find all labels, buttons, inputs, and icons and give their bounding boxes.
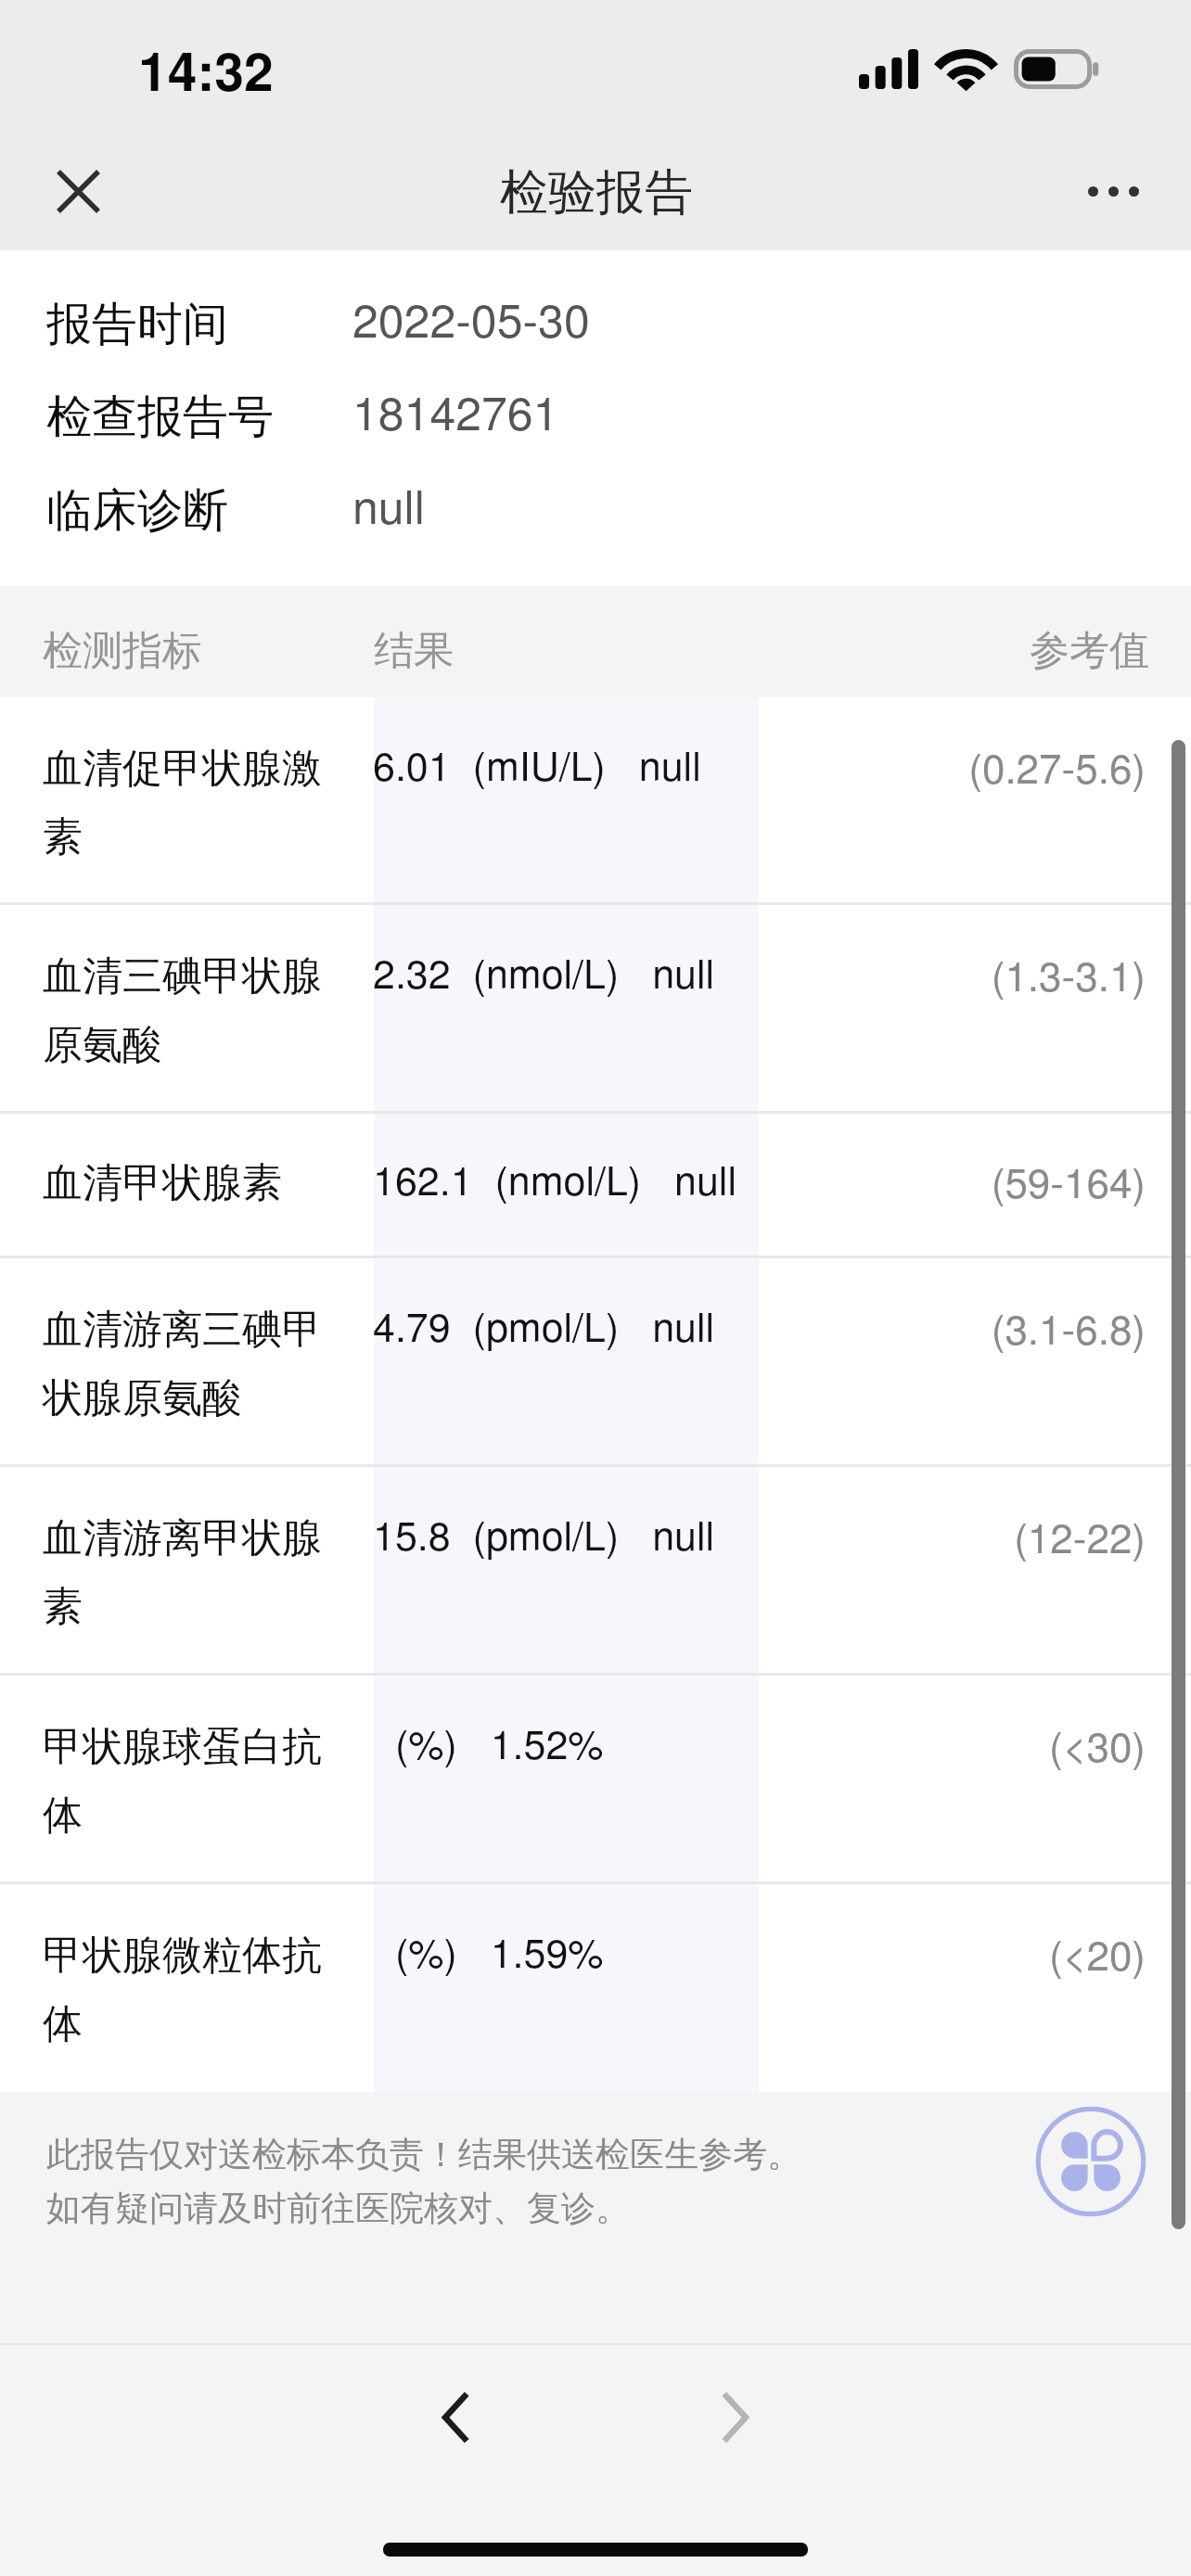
staticText: 18142761 [352, 377, 559, 444]
button[interactable]: Close [27, 140, 129, 242]
staticText: 4.79 (pmol/L) null [373, 1296, 758, 1354]
staticText: (3.1-6.8) [839, 1297, 1146, 1356]
button[interactable]: Back [403, 2366, 506, 2468]
button[interactable]: 血清促甲状腺激素 [0, 697, 1191, 905]
staticText: 血清游离甲状腺素 [43, 1513, 338, 1631]
button[interactable]: 血清甲状腺素 [0, 1114, 1191, 1258]
staticText: 2.32 (nmol/L) null [373, 943, 758, 1001]
staticText: 2022-05-30 [352, 285, 590, 351]
staticText: (%) 1.59% [373, 1922, 758, 1980]
staticText: 血清促甲状腺激素 [43, 744, 338, 861]
button[interactable]: 血清三碘甲状腺原氨酸 [0, 905, 1191, 1114]
staticText: 临床诊断 [46, 482, 228, 540]
button[interactable]: Forward [685, 2366, 787, 2468]
staticText: 检测指标 [43, 626, 202, 676]
staticText: (12-22) [839, 1506, 1146, 1564]
button[interactable]: Mini program assistant [1034, 2105, 1147, 2218]
staticText: 如有疑问请及时前往医院核对、复诊。 [46, 2187, 630, 2230]
button[interactable]: 血清游离甲状腺素 [0, 1467, 1191, 1676]
staticText: 甲状腺球蛋白抗体 [43, 1722, 338, 1840]
button[interactable]: 血清游离三碘甲状腺原氨酸 [0, 1258, 1191, 1467]
staticText: 检查报告号 [46, 389, 274, 446]
staticText: 血清游离三碘甲状腺原氨酸 [43, 1305, 338, 1422]
staticText: 参考值 [964, 626, 1149, 676]
staticText: (0.27-5.6) [839, 736, 1146, 795]
staticText: 15.8 (pmol/L) null [373, 1505, 758, 1562]
staticText: 甲状腺微粒体抗体 [43, 1931, 338, 2048]
button[interactable]: 甲状腺球蛋白抗体 [0, 1676, 1191, 1884]
staticText: (1.3-3.1) [839, 944, 1146, 1002]
staticText: 报告时间 [46, 296, 228, 353]
staticText: null [352, 471, 425, 538]
staticText: 14:32 [138, 32, 274, 108]
staticText: 结果 [374, 626, 454, 676]
staticText: 血清三碘甲状腺原氨酸 [43, 951, 338, 1069]
staticText: 检验报告 [500, 162, 693, 223]
button[interactable]: More options [1062, 140, 1164, 242]
staticText: 此报告仅对送检标本负责！结果供送检医生参考。 [46, 2133, 801, 2176]
staticText: 162.1 (nmol/L) null [373, 1150, 758, 1207]
button[interactable]: 甲状腺微粒体抗体 [0, 1884, 1191, 2092]
staticText: 血清甲状腺素 [43, 1158, 338, 1208]
staticText: (59-164) [839, 1151, 1146, 1209]
staticText: 6.01 (mIU/L) null [373, 735, 758, 793]
staticText: (<30) [839, 1715, 1146, 1773]
staticText: (%) 1.52% [373, 1714, 758, 1771]
staticText: (<20) [839, 1923, 1146, 1982]
